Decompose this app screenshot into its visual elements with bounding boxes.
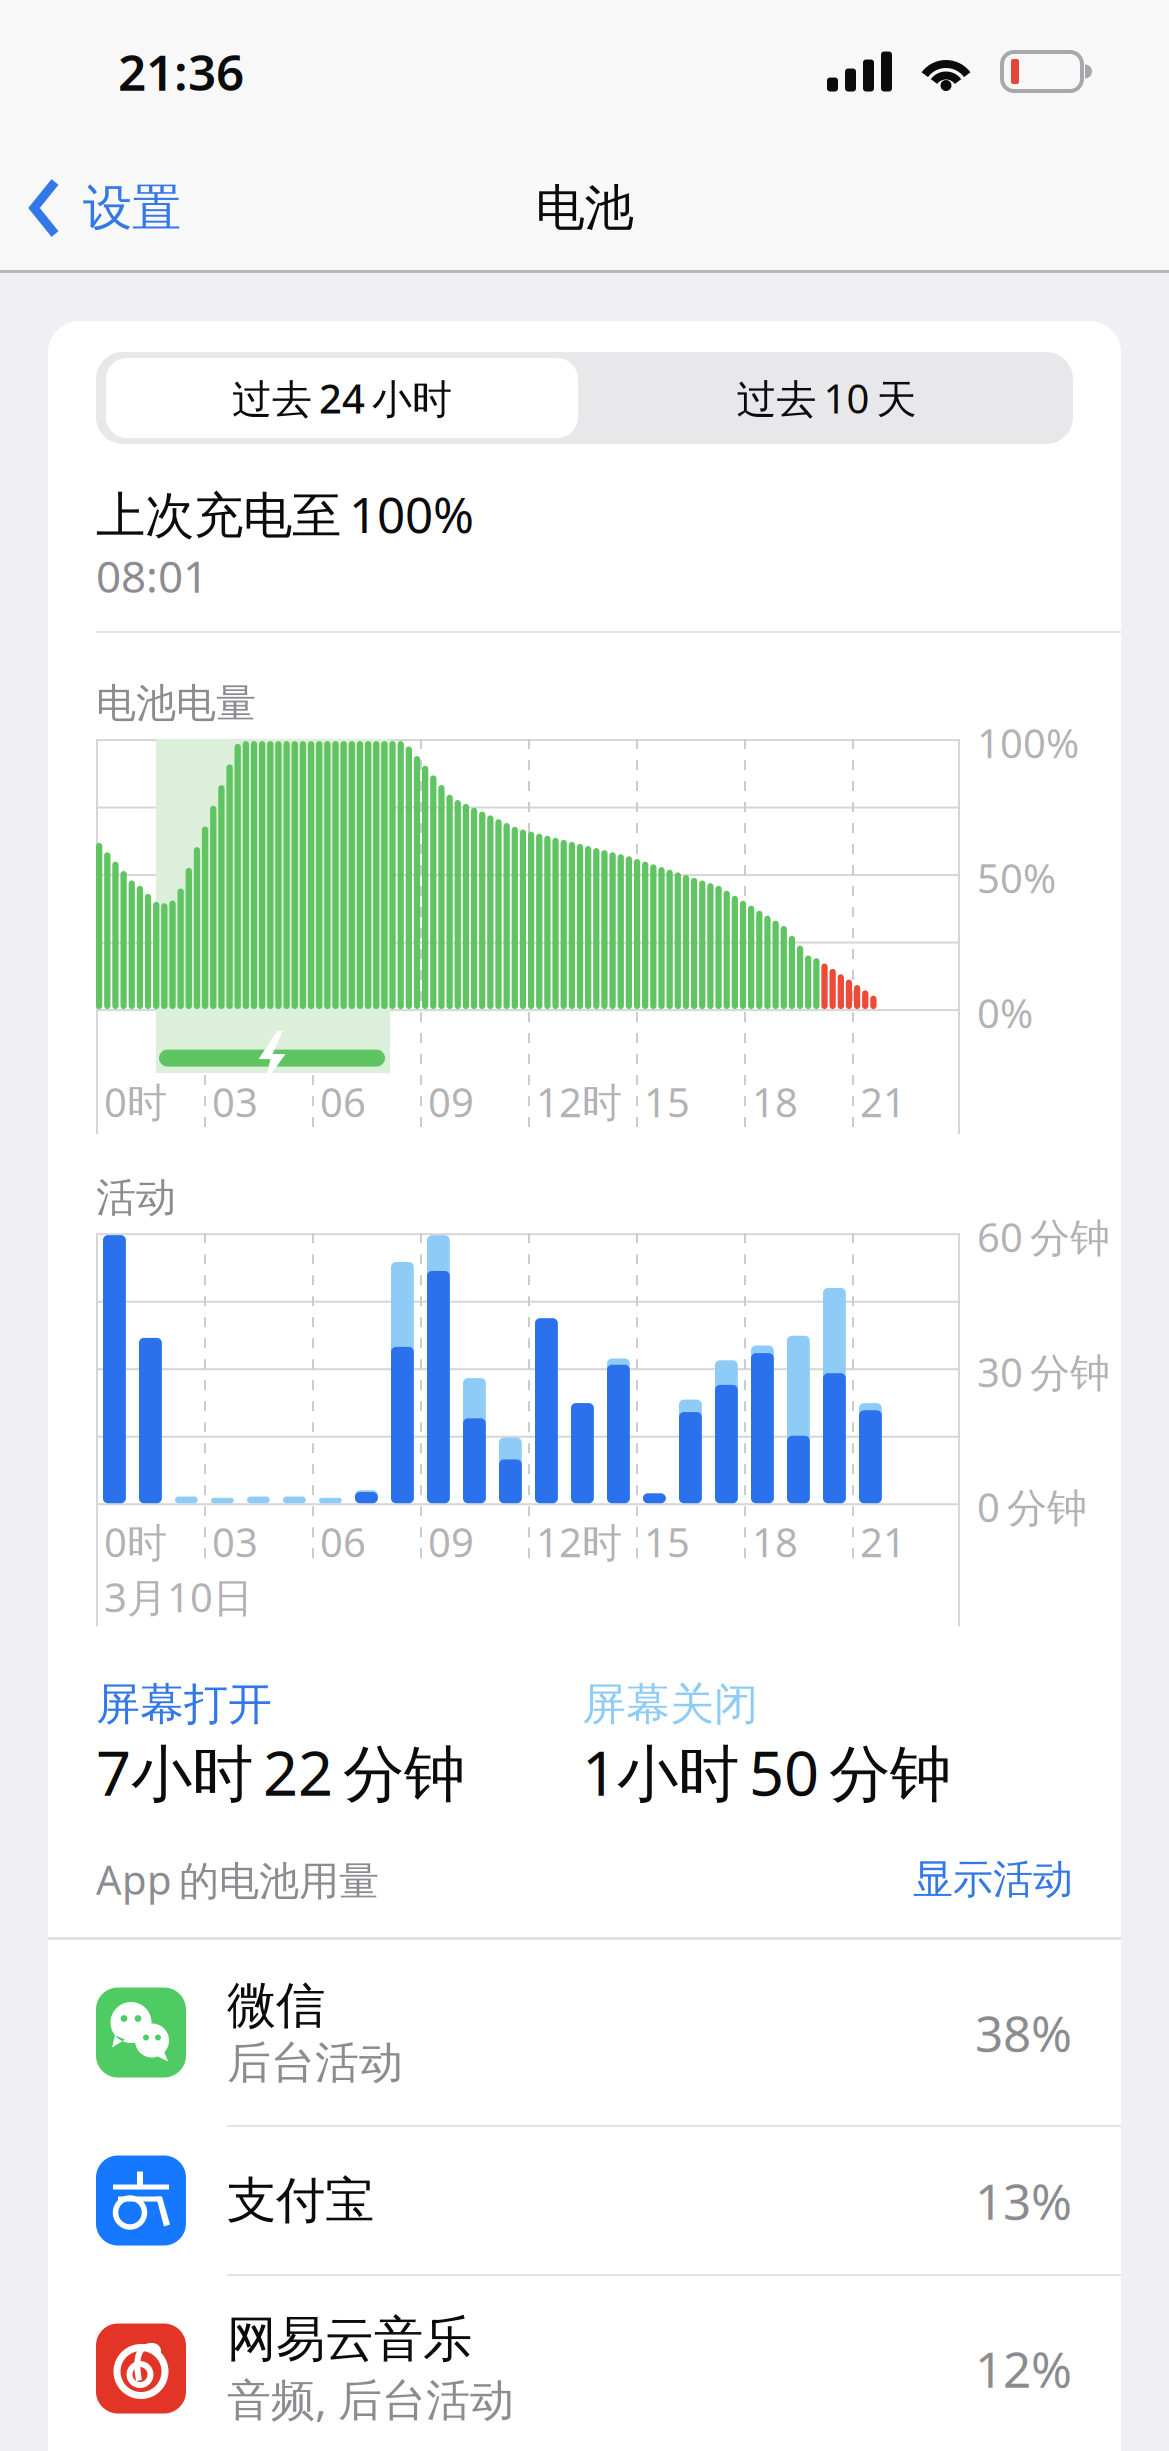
staticText: 12时 <box>536 1515 622 1568</box>
staticText: 100% <box>977 716 1079 769</box>
staticText: 0 分钟 <box>977 1480 1087 1533</box>
button[interactable]: 微信 <box>48 1940 1121 2125</box>
staticText: 08:01 <box>96 546 208 605</box>
staticText: 09 <box>428 1075 474 1128</box>
staticText: 12时 <box>536 1075 622 1128</box>
staticText: 后台活动 <box>227 2036 403 2090</box>
staticText: 设置 <box>83 178 181 238</box>
staticText: 21:36 <box>118 39 244 104</box>
button[interactable]: 显示活动 <box>913 1855 1073 1904</box>
staticText: 18 <box>752 1515 798 1568</box>
staticText: 音频, 后台活动 <box>227 2370 514 2428</box>
staticText: 屏幕关闭 <box>582 1677 758 1731</box>
staticText: 0时 <box>104 1075 167 1128</box>
staticText: 09 <box>428 1515 474 1568</box>
staticText: 过去 10 天 <box>736 371 916 424</box>
staticText: 显示活动 <box>913 1855 1073 1904</box>
staticText: 12% <box>975 2336 1072 2401</box>
staticText: 0% <box>977 986 1033 1039</box>
staticText: 18 <box>752 1075 798 1128</box>
staticText: 电池 <box>535 178 633 238</box>
staticText: 21 <box>860 1075 906 1128</box>
staticText: 微信 <box>227 1975 325 2036</box>
staticText: 3月10日 <box>104 1570 253 1623</box>
staticText: 13% <box>975 2168 1072 2233</box>
staticText: 03 <box>212 1515 258 1568</box>
button[interactable]: 过去 10 天 <box>584 352 1069 444</box>
staticText: 上次充电至 100% <box>96 481 474 546</box>
button[interactable]: 网易云音乐 <box>48 2276 1121 2451</box>
staticText: 15 <box>644 1515 690 1568</box>
staticText: 38% <box>975 2000 1072 2065</box>
staticText: 7小时 22 分钟 <box>96 1731 465 1813</box>
staticText: 21 <box>860 1515 906 1568</box>
button[interactable]: 设置 <box>8 158 203 258</box>
staticText: 06 <box>320 1075 366 1128</box>
staticText: 30 分钟 <box>977 1345 1110 1398</box>
staticText: App 的电池用量 <box>96 1853 379 1906</box>
staticText: 1小时 50 分钟 <box>582 1731 951 1813</box>
staticText: 活动 <box>96 1173 176 1222</box>
staticText: 03 <box>212 1075 258 1128</box>
staticText: 06 <box>320 1515 366 1568</box>
button[interactable]: 支付宝 <box>48 2127 1121 2274</box>
button[interactable]: 过去 24 小时 <box>100 352 584 444</box>
staticText: 60 分钟 <box>977 1210 1110 1263</box>
staticText: 支付宝 <box>227 2170 374 2231</box>
staticText: 过去 24 小时 <box>232 371 452 424</box>
staticText: 网易云音乐 <box>227 2309 472 2370</box>
staticText: 0时 <box>104 1515 167 1568</box>
staticText: 电池电量 <box>96 679 256 728</box>
staticText: 屏幕打开 <box>96 1677 272 1731</box>
staticText: 50% <box>977 851 1056 904</box>
staticText: 15 <box>644 1075 690 1128</box>
